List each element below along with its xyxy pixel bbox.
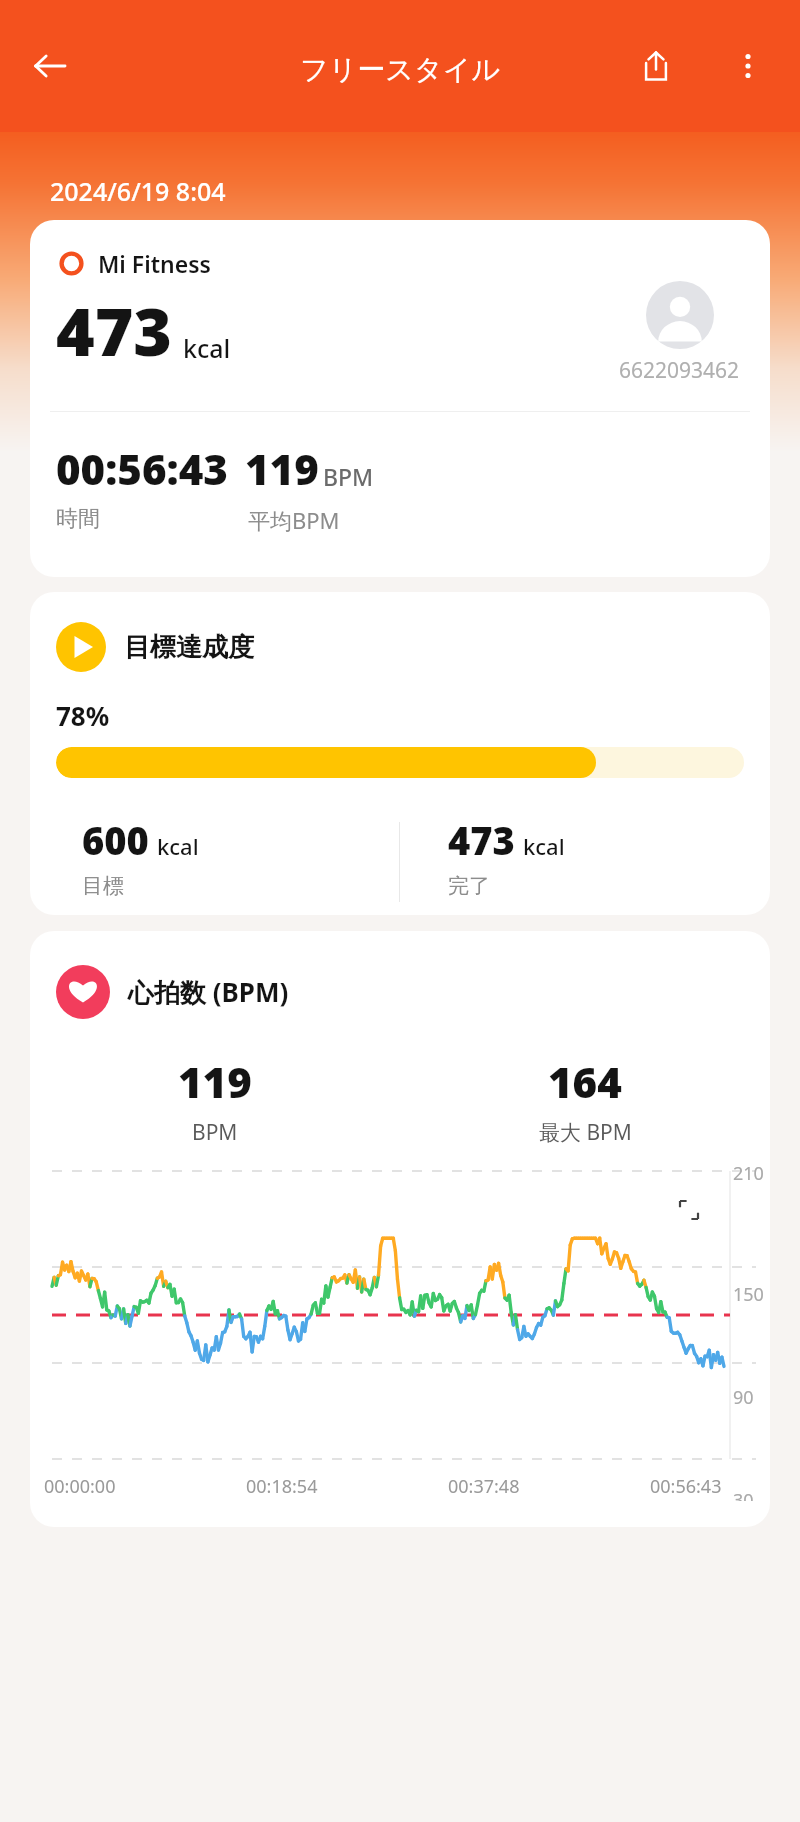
staticText: 00:56:43 (56, 440, 228, 497)
staticText: 150 (733, 1282, 764, 1307)
staticText: 6622093462 (619, 356, 740, 385)
staticText: 78% (56, 698, 110, 733)
staticText: kcal (523, 831, 565, 861)
button[interactable]: Share (628, 38, 684, 94)
staticText: 600 (82, 814, 149, 866)
staticText: 473 (56, 285, 173, 375)
staticText: 最大 BPM (539, 1118, 632, 1147)
button[interactable]: Back (22, 38, 78, 94)
staticText: 2024/6/19 8:04 (50, 174, 226, 208)
staticText: 119 (178, 1053, 252, 1110)
staticText: kcal (183, 331, 231, 365)
staticText: 210 (733, 1161, 764, 1186)
staticText: 00:56:43 (650, 1474, 722, 1499)
button[interactable]: 目標達成度 (30, 592, 770, 915)
staticText: 119 (245, 440, 319, 497)
staticText: フリースタイル (300, 52, 500, 87)
button[interactable]: 心拍数 (BPM) (30, 931, 770, 1527)
button[interactable]: Expand chart (666, 1187, 712, 1233)
staticText: 30 (733, 1488, 754, 1501)
staticText: 00:18:54 (246, 1474, 318, 1499)
staticText: kcal (157, 831, 199, 861)
staticText: 00:37:48 (448, 1474, 520, 1499)
staticText: Mi Fitness (98, 248, 211, 279)
staticText: 00:00:00 (44, 1474, 116, 1499)
staticText: 心拍数 (BPM) (128, 974, 289, 1010)
button[interactable]: Mi Fitness (30, 220, 770, 577)
staticText: 473 (448, 814, 515, 866)
staticText: 時間 (56, 505, 100, 533)
staticText: BPM (192, 1118, 238, 1147)
staticText: 完了 (448, 873, 490, 899)
staticText: 平均BPM (248, 505, 340, 535)
staticText: BPM (323, 461, 374, 492)
button[interactable]: More options (720, 38, 776, 94)
staticText: 90 (733, 1385, 754, 1410)
staticText: 目標達成度 (124, 631, 254, 664)
staticText: 目標 (82, 873, 124, 899)
staticText: 164 (548, 1053, 622, 1110)
